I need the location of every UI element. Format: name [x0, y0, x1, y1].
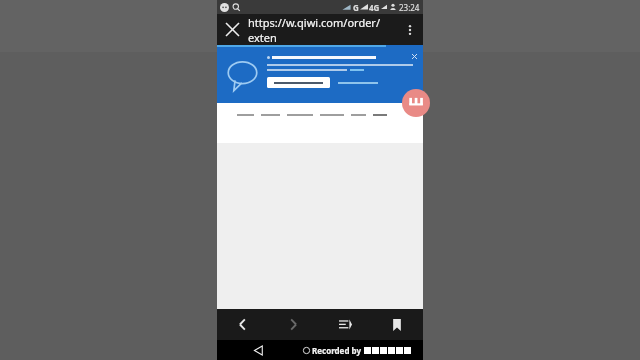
- button[interactable]: Reading list: [319, 309, 371, 340]
- button[interactable]: Back: [217, 309, 268, 340]
- button[interactable]: https://w.qiwi.com/order/exten: [248, 15, 397, 45]
- button[interactable]: Back: [249, 341, 267, 359]
- button[interactable]: Close: [217, 14, 248, 45]
- button[interactable]: Menu item 4: [320, 110, 344, 119]
- button[interactable]: Menu item 3: [287, 110, 313, 119]
- button[interactable]: Bookmarks: [371, 309, 423, 340]
- staticText: Recorded by: [312, 345, 361, 356]
- button[interactable]: Menu item 6: [373, 110, 387, 119]
- button[interactable]: Menu item 5: [351, 110, 366, 119]
- button[interactable]: Dismiss banner: [408, 50, 420, 62]
- staticText: 23:24: [399, 2, 420, 13]
- button[interactable]: Site badge: [402, 89, 430, 117]
- button[interactable]: Menu item 2: [261, 110, 280, 119]
- button[interactable]: Forward: [268, 309, 319, 340]
- button[interactable]: Menu item 1: [237, 110, 254, 119]
- staticText: G: [353, 2, 359, 13]
- button[interactable]: [267, 77, 330, 88]
- button[interactable]: More options: [397, 17, 423, 43]
- staticText: 4G: [369, 2, 380, 13]
